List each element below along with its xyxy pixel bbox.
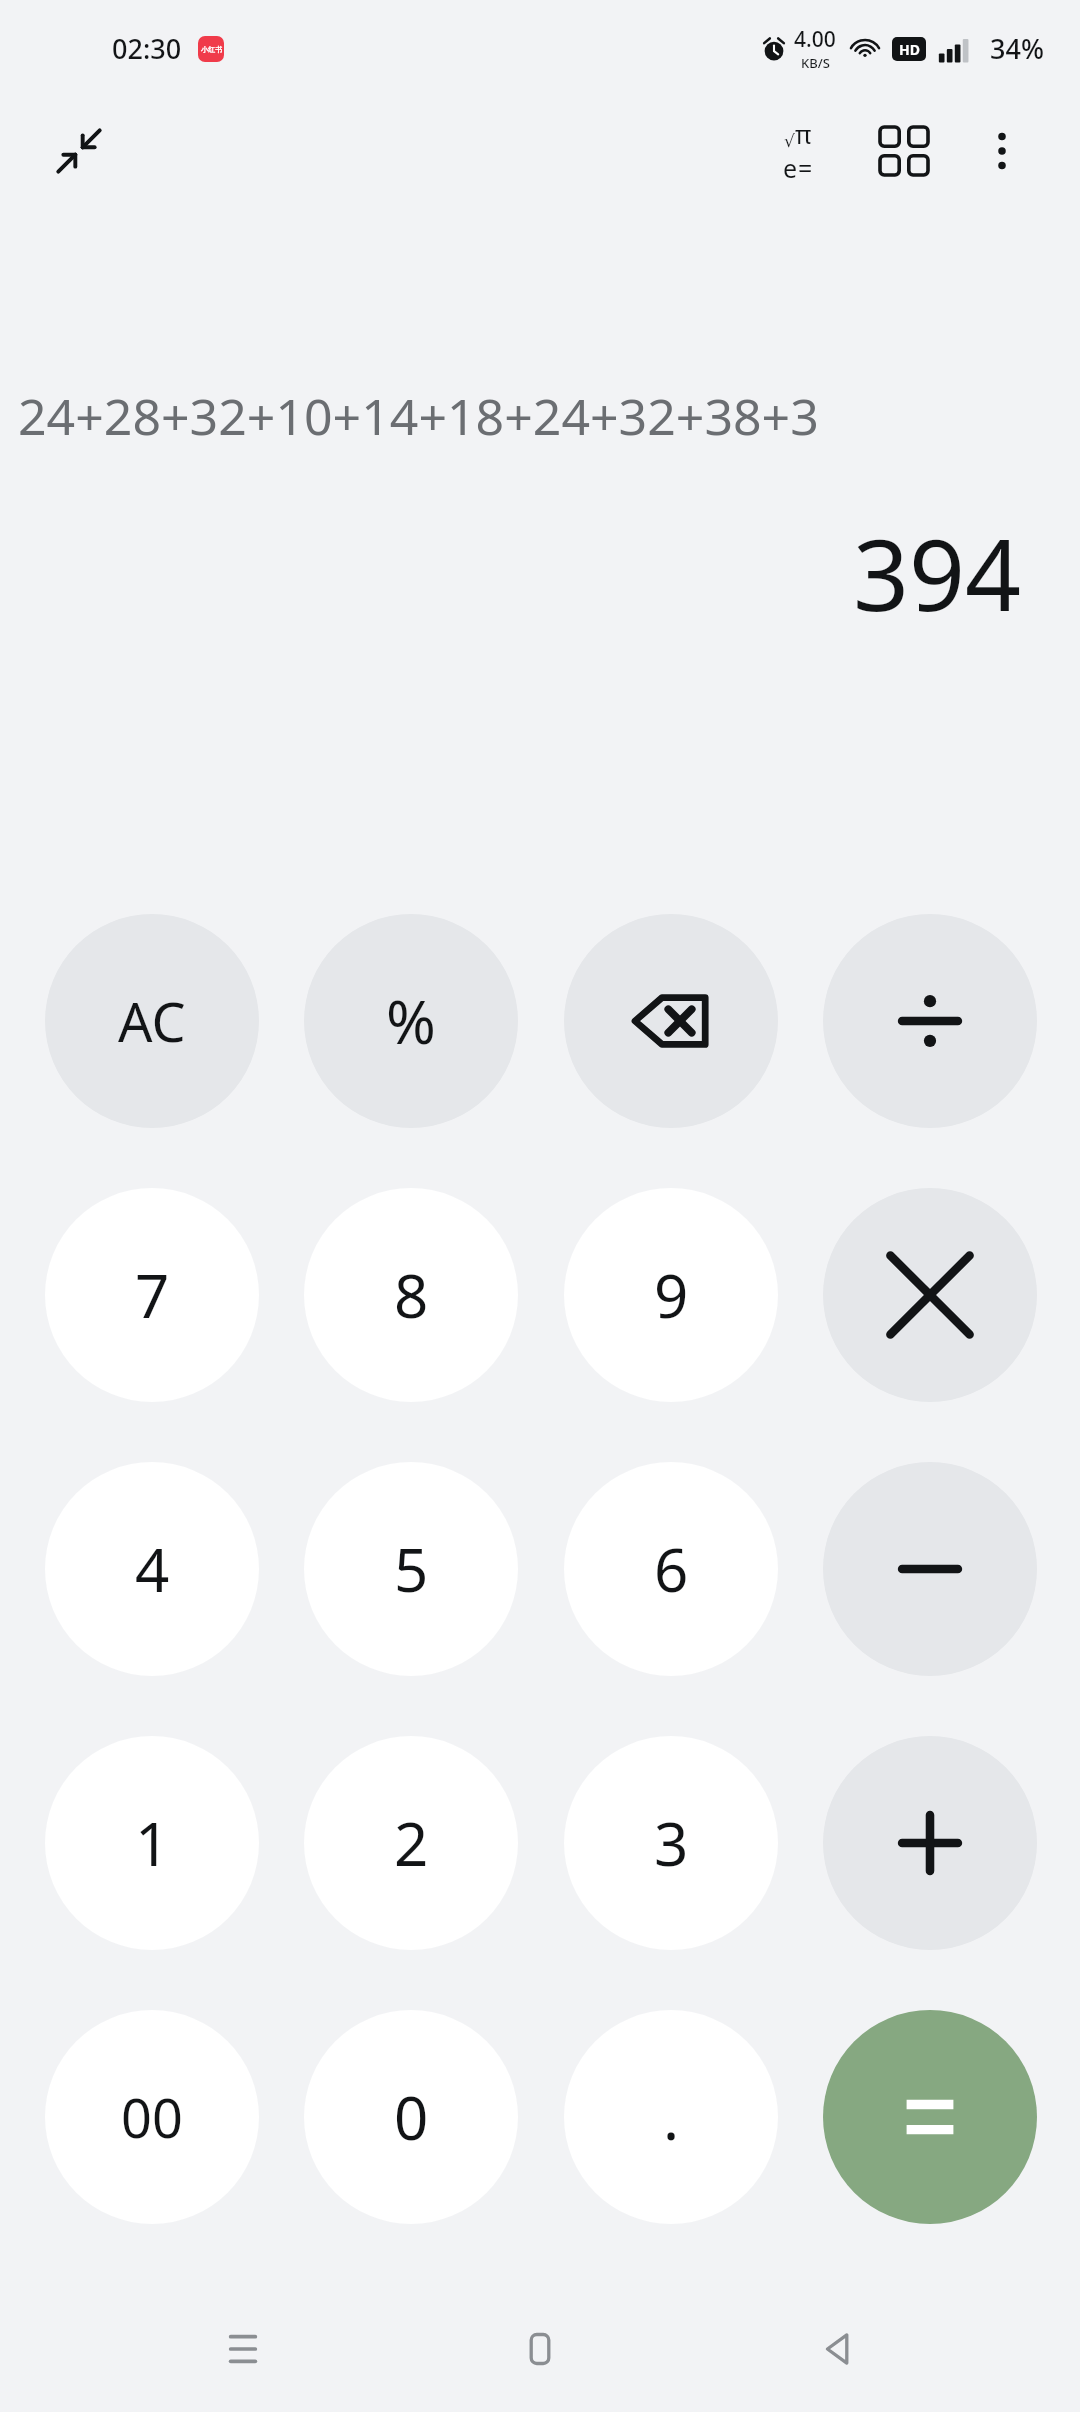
staticText: HD — [899, 40, 920, 59]
staticText: 00 — [121, 2080, 183, 2154]
button[interactable]: 00 — [45, 2010, 259, 2224]
button[interactable]: Backspace — [564, 914, 778, 1128]
button[interactable]: 2 — [304, 1736, 518, 1950]
staticText: AC — [118, 984, 186, 1058]
button[interactable]: 0 — [304, 2010, 518, 2224]
staticText: 9 — [654, 1254, 689, 1336]
staticText: e — [783, 151, 798, 185]
button[interactable]: Minus — [823, 1462, 1037, 1676]
staticText: % — [386, 980, 436, 1062]
staticText: 34% — [990, 30, 1044, 67]
button[interactable]: Recent apps — [188, 2294, 298, 2404]
button[interactable]: % — [304, 914, 518, 1128]
staticText: = — [798, 151, 813, 185]
button[interactable]: Plus — [823, 1736, 1037, 1950]
button[interactable]: AC — [45, 914, 259, 1128]
button[interactable]: 5 — [304, 1462, 518, 1676]
staticText: 4.00 — [794, 25, 836, 54]
staticText: 6 — [654, 1528, 689, 1610]
staticText: 5 — [394, 1528, 429, 1610]
staticText: π — [795, 117, 812, 151]
button[interactable]: Multiply — [823, 1188, 1037, 1402]
button[interactable]: Equals — [823, 2010, 1037, 2224]
staticText: 7 — [135, 1254, 170, 1336]
staticText: 02:30 — [112, 30, 182, 67]
button[interactable]: 6 — [564, 1462, 778, 1676]
staticText: √ — [784, 131, 795, 151]
staticText: 3 — [654, 1802, 689, 1884]
button[interactable]: Back — [783, 2294, 893, 2404]
staticText: 394 — [853, 506, 1022, 636]
button[interactable]: Scientific — [756, 109, 840, 193]
staticText: 24+28+32+10+14+18+24+32+38+3 — [18, 382, 819, 450]
staticText: 小红书 — [201, 45, 222, 54]
staticText: KB/S — [801, 54, 830, 72]
staticText: 8 — [394, 1254, 429, 1336]
button[interactable]: Collapse — [40, 112, 118, 190]
staticText: 0 — [394, 2076, 429, 2158]
button[interactable]: Keypad layout — [862, 109, 946, 193]
staticText: . — [663, 2076, 680, 2158]
button[interactable]: 3 — [564, 1736, 778, 1950]
button[interactable]: Home — [485, 2294, 595, 2404]
button[interactable]: Divide — [823, 914, 1037, 1128]
staticText: 1 — [135, 1802, 170, 1884]
button[interactable]: 4 — [45, 1462, 259, 1676]
staticText: 2 — [394, 1802, 429, 1884]
button[interactable]: More options — [960, 109, 1044, 193]
staticText: 4 — [135, 1528, 170, 1610]
button[interactable]: . — [564, 2010, 778, 2224]
button[interactable]: 8 — [304, 1188, 518, 1402]
button[interactable]: 1 — [45, 1736, 259, 1950]
button[interactable]: 7 — [45, 1188, 259, 1402]
button[interactable]: 9 — [564, 1188, 778, 1402]
